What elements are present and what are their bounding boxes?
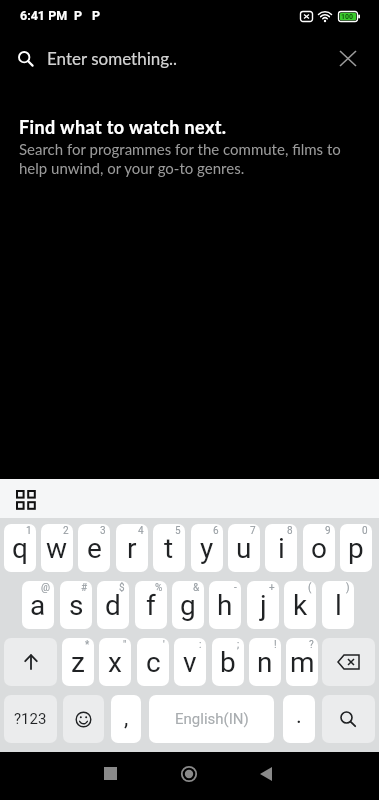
staticText: ( — [308, 582, 312, 594]
staticText: t — [164, 532, 174, 565]
staticText: 100 — [341, 13, 354, 21]
button[interactable] — [322, 638, 375, 686]
staticText: p — [348, 532, 364, 565]
button[interactable]: , — [111, 695, 141, 743]
button[interactable]: w — [41, 524, 73, 572]
button[interactable]: u — [228, 524, 260, 572]
button[interactable]: d — [97, 581, 129, 629]
button[interactable]: p — [340, 524, 372, 572]
staticText: ) — [346, 582, 350, 594]
button[interactable]: l — [322, 581, 354, 629]
button[interactable]: h — [209, 581, 241, 629]
staticText: 4 — [138, 525, 144, 537]
staticText: ; — [237, 639, 240, 651]
button[interactable]: v — [174, 638, 206, 686]
staticText: l — [335, 589, 342, 622]
button[interactable]: k — [284, 581, 316, 629]
staticText: 6:41 PM — [20, 8, 68, 23]
staticText: c — [146, 646, 161, 679]
staticText: ! — [274, 639, 277, 651]
button[interactable]: m — [286, 638, 318, 686]
staticText: w — [46, 532, 68, 565]
staticText: Search for programmes for the commute, f… — [19, 140, 341, 178]
button[interactable]: z — [62, 638, 94, 686]
button[interactable] — [63, 695, 104, 743]
staticText: s — [69, 589, 84, 622]
staticText: d — [105, 589, 121, 622]
button[interactable]: n — [249, 638, 281, 686]
button[interactable]: x — [99, 638, 131, 686]
button[interactable]: j — [247, 581, 279, 629]
button[interactable] — [340, 51, 357, 67]
staticText: Enter something.. — [47, 48, 178, 68]
button[interactable] — [4, 638, 57, 686]
button[interactable]: i — [265, 524, 297, 572]
staticText: & — [193, 582, 200, 594]
button[interactable] — [181, 766, 197, 782]
staticText: ' — [163, 639, 165, 651]
button[interactable]: q — [4, 524, 36, 572]
staticText: h — [217, 589, 233, 622]
staticText: 1 — [26, 525, 32, 537]
staticText: ? — [309, 639, 314, 651]
staticText: y — [200, 532, 214, 565]
staticText: $ — [119, 582, 125, 594]
button[interactable]: y — [191, 524, 223, 572]
staticText: 8 — [287, 525, 293, 537]
staticText: z — [71, 646, 85, 679]
staticText: 5 — [175, 525, 181, 537]
staticText: 9 — [325, 525, 331, 537]
staticText: 7 — [250, 525, 256, 537]
staticText: % — [155, 582, 163, 594]
button[interactable]: o — [303, 524, 335, 572]
button[interactable] — [16, 490, 36, 510]
button[interactable]: g — [172, 581, 204, 629]
staticText: b — [220, 646, 236, 679]
staticText: o — [311, 532, 327, 565]
staticText: Find what to watch next. — [19, 116, 227, 138]
button[interactable]: a — [22, 581, 54, 629]
staticText: . — [296, 703, 302, 729]
button[interactable]: b — [212, 638, 244, 686]
button[interactable]: s — [60, 581, 92, 629]
button[interactable]: t — [153, 524, 185, 572]
staticText: 0 — [362, 525, 368, 537]
button[interactable]: Enter something.. — [0, 38, 379, 80]
staticText: @ — [41, 582, 50, 594]
staticText: # — [81, 582, 88, 594]
button[interactable]: ?123 — [4, 695, 57, 743]
button[interactable]: . — [283, 695, 315, 743]
staticText: a — [30, 589, 46, 622]
staticText: r — [127, 532, 137, 565]
staticText: x — [108, 646, 122, 679]
staticText: 2 — [63, 525, 69, 537]
staticText: + — [269, 582, 275, 594]
button[interactable]: r — [116, 524, 148, 572]
button[interactable]: e — [78, 524, 110, 572]
staticText: q — [12, 532, 28, 565]
staticText: - — [234, 582, 237, 594]
button[interactable]: f — [135, 581, 167, 629]
staticText: * — [85, 639, 90, 651]
staticText: m — [290, 646, 315, 679]
staticText: i — [278, 532, 285, 565]
staticText: 3 — [100, 525, 106, 537]
button[interactable]: c — [137, 638, 169, 686]
button[interactable] — [322, 695, 375, 743]
button[interactable] — [104, 767, 118, 781]
staticText: P — [74, 8, 83, 23]
button[interactable]: English(IN) — [149, 695, 274, 743]
staticText: n — [257, 646, 273, 679]
staticText: " — [123, 639, 127, 651]
staticText: k — [293, 589, 308, 622]
staticText: e — [87, 532, 102, 565]
staticText: v — [183, 646, 197, 679]
staticText: 6 — [213, 525, 219, 537]
staticText: English(IN) — [175, 710, 249, 728]
staticText: f — [146, 589, 156, 622]
staticText: g — [180, 589, 196, 622]
staticText: P — [92, 8, 101, 23]
staticText: , — [124, 705, 129, 731]
staticText: ?123 — [14, 710, 47, 728]
button[interactable] — [260, 767, 273, 781]
